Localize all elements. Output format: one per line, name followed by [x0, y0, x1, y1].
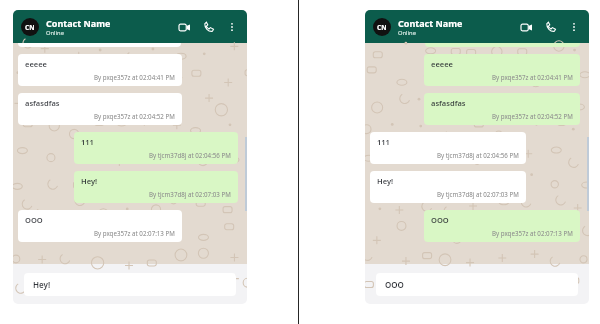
staticText: By tjcm37d8j at 02:07:03 PM	[149, 190, 231, 198]
button[interactable]: Hey!	[74, 171, 238, 203]
staticText: By pxqe357z at 02:04:52 PM	[492, 112, 573, 120]
staticText: Online	[398, 29, 416, 37]
staticText: eeeee	[25, 59, 47, 69]
button[interactable]: CN	[21, 18, 39, 36]
button[interactable]: Video call	[176, 19, 192, 35]
button[interactable]: Call	[543, 19, 559, 35]
staticText: eeeee	[431, 59, 453, 69]
staticText: CN	[377, 23, 387, 32]
staticText: By tjcm37d8j at 02:04:56 PM	[437, 151, 519, 159]
button[interactable]: OOO	[18, 210, 182, 242]
staticText: CN	[25, 23, 35, 32]
staticText: By pxqe357z at 02:04:41 PM	[94, 73, 175, 81]
staticText: Online	[46, 29, 64, 37]
staticText: asfasdfas	[431, 98, 466, 108]
button[interactable]: Call	[201, 19, 217, 35]
button[interactable]: Hey!	[370, 171, 526, 203]
staticText: OOO	[385, 279, 404, 290]
button[interactable]: 111	[370, 132, 526, 164]
staticText: Contact Name	[46, 17, 111, 29]
button[interactable]: Hey!	[24, 273, 236, 296]
staticText: Hey!	[377, 176, 394, 186]
button[interactable]: OOO	[376, 273, 578, 296]
staticText: By pxqe357z at 02:04:52 PM	[94, 112, 175, 120]
staticText: By pxqe357z at 02:07:13 PM	[94, 229, 175, 237]
staticText: 111	[377, 137, 390, 147]
button[interactable]: More options	[225, 20, 239, 34]
button[interactable]: 111	[74, 132, 238, 164]
staticText: Contact Name	[398, 17, 463, 29]
button[interactable]: OOO	[424, 210, 580, 242]
staticText: By tjcm37d8j at 02:07:03 PM	[437, 190, 519, 198]
button[interactable]: Video call	[518, 19, 534, 35]
staticText: asfasdfas	[25, 98, 60, 108]
staticText: 111	[81, 137, 94, 147]
staticText: By tjcm37d8j at 02:04:56 PM	[149, 151, 231, 159]
button[interactable]: asfasdfas	[18, 93, 182, 125]
button[interactable]: More options	[567, 20, 581, 34]
button[interactable]: CN	[373, 18, 391, 36]
button[interactable]: eeeee	[18, 54, 182, 86]
staticText: OOO	[25, 215, 43, 225]
staticText: Hey!	[81, 176, 98, 186]
staticText: OOO	[431, 215, 449, 225]
button[interactable]: asfasdfas	[424, 93, 580, 125]
button[interactable]: eeeee	[424, 54, 580, 86]
staticText: Hey!	[33, 279, 51, 290]
staticText: By pxqe357z at 02:04:41 PM	[492, 73, 573, 81]
staticText: By pxqe357z at 02:07:13 PM	[492, 229, 573, 237]
